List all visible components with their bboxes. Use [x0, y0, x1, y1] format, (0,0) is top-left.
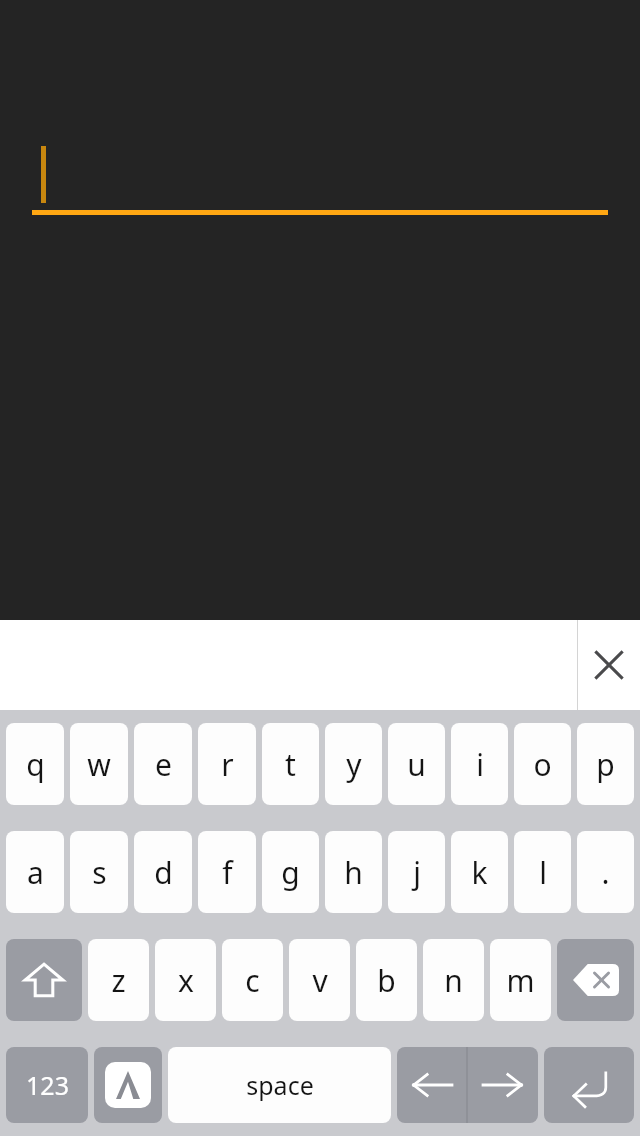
staticText: s: [92, 852, 107, 893]
staticText: a: [27, 852, 44, 893]
button[interactable]: Close keyboard: [578, 620, 640, 710]
button[interactable]: c: [222, 939, 283, 1021]
staticText: g: [281, 852, 300, 893]
button[interactable]: s: [70, 831, 128, 913]
staticText: q: [26, 744, 45, 785]
staticText: r: [221, 744, 234, 785]
staticText: j: [413, 852, 421, 893]
button[interactable]: u: [388, 723, 445, 805]
button[interactable]: x: [155, 939, 216, 1021]
staticText: t: [285, 744, 296, 785]
staticText: n: [444, 960, 463, 1001]
staticText: x: [178, 960, 194, 1001]
button[interactable]: v: [289, 939, 350, 1021]
staticText: f: [222, 852, 233, 893]
button[interactable]: f: [198, 831, 256, 913]
button[interactable]: Move cursor left: [397, 1047, 466, 1123]
staticText: b: [377, 960, 396, 1001]
staticText: k: [471, 852, 488, 893]
staticText: c: [245, 960, 260, 1001]
staticText: .: [601, 852, 610, 893]
staticText: l: [539, 852, 547, 893]
staticText: space: [246, 1068, 314, 1102]
staticText: u: [407, 744, 426, 785]
button[interactable]: o: [514, 723, 571, 805]
staticText: 123: [26, 1068, 69, 1102]
staticText: w: [87, 744, 111, 785]
button[interactable]: n: [423, 939, 484, 1021]
button[interactable]: .: [577, 831, 634, 913]
staticText: m: [506, 960, 535, 1001]
button[interactable]: t: [262, 723, 319, 805]
button[interactable]: p: [577, 723, 634, 805]
staticText: y: [346, 744, 362, 785]
button[interactable]: 123: [6, 1047, 88, 1123]
button[interactable]: space: [168, 1047, 391, 1123]
button[interactable]: y: [325, 723, 382, 805]
staticText: i: [476, 744, 484, 785]
button[interactable]: k: [451, 831, 508, 913]
button[interactable]: j: [388, 831, 445, 913]
button[interactable]: i: [451, 723, 508, 805]
button[interactable]: b: [356, 939, 417, 1021]
button[interactable]: m: [490, 939, 551, 1021]
button[interactable]: Backspace: [557, 939, 634, 1021]
staticText: z: [111, 960, 126, 1001]
staticText: o: [533, 744, 552, 785]
button[interactable]: e: [134, 723, 192, 805]
button[interactable]: Shift: [6, 939, 82, 1021]
button[interactable]: w: [70, 723, 128, 805]
button[interactable]: d: [134, 831, 192, 913]
staticText: h: [344, 852, 363, 893]
button[interactable]: Switch keyboard: [94, 1047, 162, 1123]
button[interactable]: Enter: [544, 1047, 634, 1123]
button[interactable]: Move cursor right: [468, 1047, 538, 1123]
staticText: e: [155, 744, 172, 785]
button[interactable]: l: [514, 831, 571, 913]
button[interactable]: r: [198, 723, 256, 805]
staticText: d: [154, 852, 173, 893]
button[interactable]: q: [6, 723, 64, 805]
button[interactable]: a: [6, 831, 64, 913]
staticText: v: [312, 960, 328, 1001]
button[interactable]: h: [325, 831, 382, 913]
button[interactable]: z: [88, 939, 149, 1021]
button[interactable]: g: [262, 831, 319, 913]
staticText: p: [596, 744, 615, 785]
